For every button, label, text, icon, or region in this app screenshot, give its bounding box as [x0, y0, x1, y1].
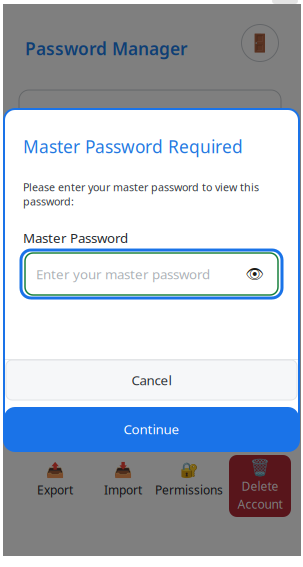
- button[interactable]: 📤: [20, 462, 90, 504]
- staticText: Export: [37, 482, 73, 498]
- staticText: 📥: [114, 462, 132, 479]
- button[interactable]: 📥: [88, 462, 158, 504]
- staticText: Cancel: [131, 371, 171, 389]
- button[interactable]: Continue: [4, 407, 299, 451]
- staticText: Import: [104, 482, 142, 498]
- staticText: 🗑️: [250, 458, 270, 476]
- staticText: Master Password Required: [23, 135, 243, 158]
- button[interactable]: Show password: [243, 262, 267, 286]
- button[interactable]: 🗑️: [229, 455, 291, 517]
- staticText: 👁: [245, 266, 264, 282]
- staticText: 🚪: [249, 33, 271, 53]
- staticText: Continue: [123, 420, 179, 438]
- staticText: 📤: [46, 462, 64, 479]
- staticText: Password Manager: [25, 37, 188, 60]
- staticText: Delete: [241, 478, 278, 494]
- staticText: Account: [237, 496, 282, 512]
- staticText: Enter your master password: [36, 265, 210, 283]
- staticText: Please enter your master password to vie…: [23, 180, 259, 208]
- staticText: 🔐: [180, 462, 198, 479]
- button[interactable]: Log out: [241, 24, 279, 62]
- staticText: Master Password: [23, 229, 128, 247]
- staticText: Permissions: [155, 482, 223, 498]
- button[interactable]: Cancel: [6, 360, 297, 400]
- button[interactable]: 🔐: [154, 462, 224, 504]
